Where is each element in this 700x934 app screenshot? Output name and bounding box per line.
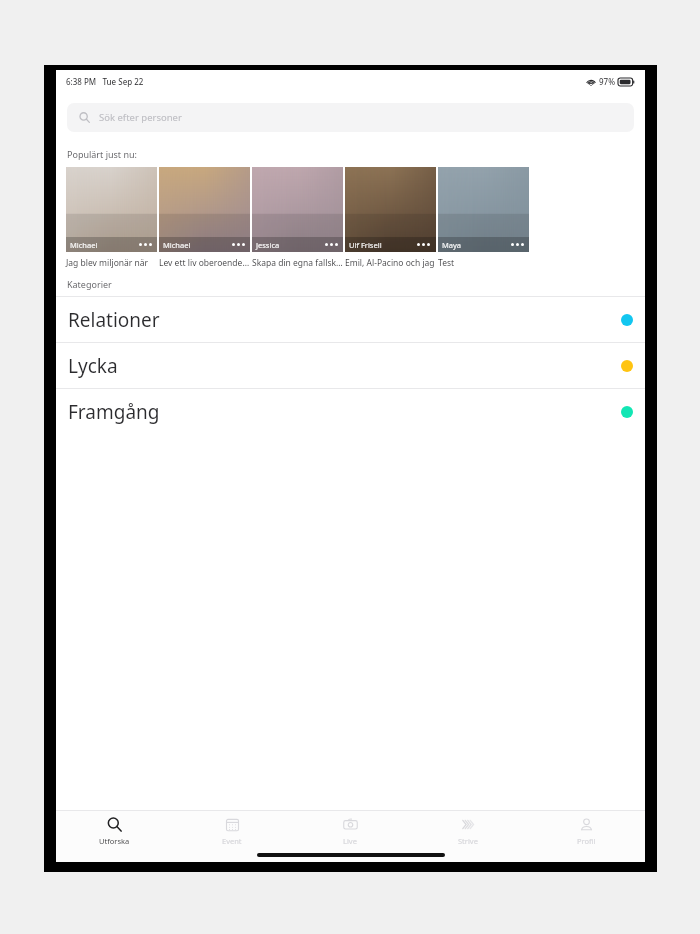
button[interactable]: Sök efter personer [67,103,634,132]
staticText: 6:38 PM Tue Sep 22 [66,76,144,87]
button[interactable]: Ulf Frisell [345,167,436,269]
staticText: Michael Hakkinen [163,240,197,250]
button[interactable]: Michael Hakkinen [159,167,250,269]
staticText: Emil, Al-Pacino och jag [345,257,435,269]
button[interactable]: Lycka [56,343,645,388]
button[interactable]: Framgång [56,389,645,434]
staticText: Strive [458,836,478,846]
staticText: Live [343,836,357,846]
button[interactable]: More options [231,240,246,249]
staticText: Maya Heart [442,240,476,250]
staticText: Event [222,836,242,846]
staticText: Populärt just nu: [67,148,137,160]
button[interactable]: More options [324,240,339,249]
button[interactable]: More options [138,240,153,249]
button[interactable]: Strive [409,817,527,862]
staticText: Kategorier [67,278,112,290]
staticText: Profil [577,836,596,846]
staticText: Test [438,257,455,269]
staticText: Lycka [68,353,118,379]
staticText: Relationer [68,307,160,333]
staticText: Sök efter personer [99,111,182,124]
button[interactable]: Maya Heart [438,167,529,269]
button[interactable]: More options [510,240,525,249]
button[interactable]: Profil [527,817,645,862]
staticText: 97% [599,76,615,87]
button[interactable]: Live [291,817,409,862]
staticText: Ulf Frisell [349,240,382,250]
staticText: Skapa din egna fallsk… [252,257,343,269]
staticText: Lev ett liv oberoende… [159,257,250,269]
staticText: Framgång [68,399,160,425]
button[interactable]: More options [416,240,431,249]
button[interactable]: Michael Hakkinen [66,167,157,269]
staticText: Utforska [99,836,130,846]
button[interactable]: Event [173,817,291,862]
button[interactable]: Relationer [56,297,645,342]
button[interactable]: Jessica Schultz [252,167,343,269]
staticText: Jag blev miljonär när j… [66,257,157,269]
staticText: Michael Hakkinen [70,240,104,250]
staticText: Jessica Schultz [256,240,290,250]
button[interactable]: Utforska [56,817,173,862]
